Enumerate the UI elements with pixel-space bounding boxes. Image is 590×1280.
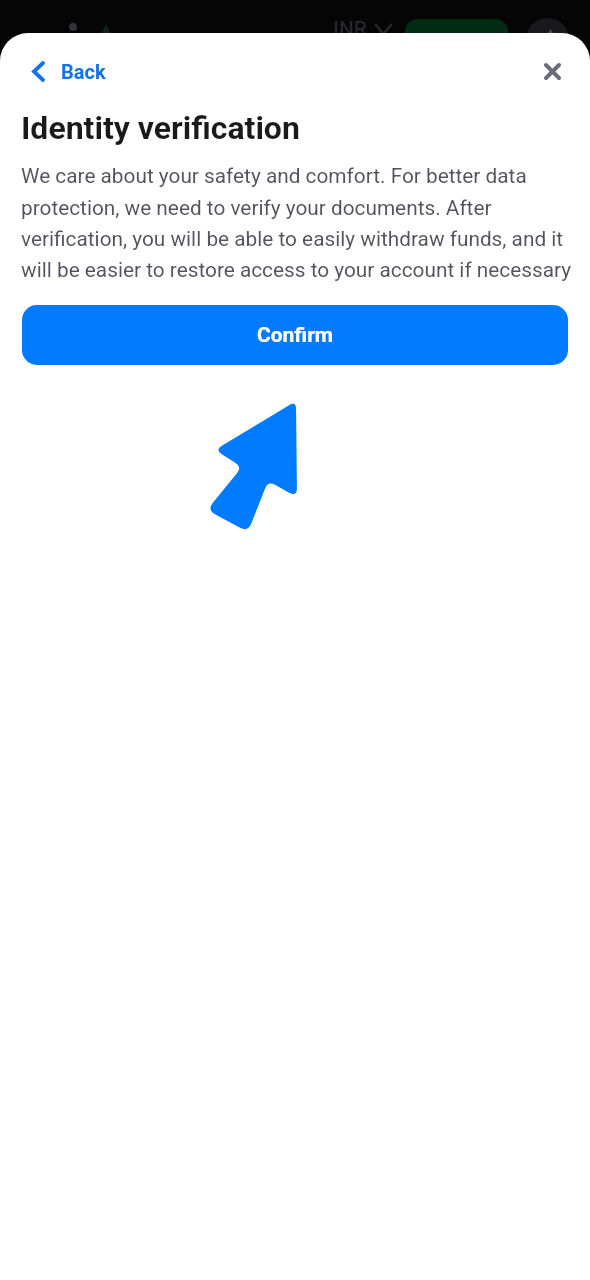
staticText: Identity verification xyxy=(21,109,300,147)
staticText: We care about your safety and comfort. F… xyxy=(21,164,590,282)
button[interactable]: Close xyxy=(528,47,576,95)
staticText: Confirm xyxy=(257,323,334,348)
button[interactable]: Back xyxy=(0,50,124,93)
staticText: Back xyxy=(61,60,106,83)
staticText: INR xyxy=(333,17,368,42)
button[interactable]: Confirm xyxy=(22,305,568,365)
